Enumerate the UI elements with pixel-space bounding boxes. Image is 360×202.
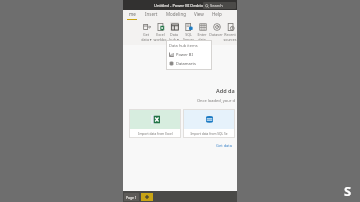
button[interactable]: Get bbox=[139, 21, 153, 45]
staticText: Import data from SQL Se bbox=[190, 132, 228, 136]
button[interactable]: Modeling bbox=[162, 10, 190, 21]
staticText: View bbox=[194, 11, 204, 17]
staticText: Data hub items bbox=[169, 43, 198, 48]
staticText: Data bbox=[170, 32, 178, 37]
staticText: Dataverse bbox=[209, 32, 223, 37]
staticText: me bbox=[129, 11, 136, 17]
staticText: Enter bbox=[197, 32, 207, 37]
staticText: Modeling bbox=[166, 11, 186, 17]
button[interactable]: me bbox=[123, 10, 141, 21]
staticText: hub ▾ bbox=[169, 37, 179, 42]
staticText: workbook bbox=[153, 37, 167, 42]
button[interactable]: Dataverse bbox=[209, 21, 223, 45]
staticText: Untitled - Power BI Desktop bbox=[154, 3, 206, 8]
staticText: Add da bbox=[216, 87, 235, 94]
staticText: sources ▾ bbox=[223, 37, 237, 42]
button[interactable]: Data bbox=[167, 21, 181, 45]
button[interactable]: SQL bbox=[181, 21, 195, 45]
button[interactable]: View bbox=[190, 10, 208, 21]
staticText: data ▾ bbox=[141, 37, 152, 42]
staticText: Help bbox=[212, 11, 222, 17]
button[interactable]: Get data bbox=[214, 141, 235, 150]
button[interactable]: Insert bbox=[141, 10, 162, 21]
staticText: Datamarts (Preview) bbox=[176, 61, 209, 66]
staticText: Import data from Excel bbox=[138, 132, 173, 136]
staticText: Server bbox=[183, 37, 194, 42]
button[interactable]: Excel bbox=[153, 21, 167, 45]
button[interactable]: Import data from Excel bbox=[129, 109, 181, 138]
staticText: Search bbox=[210, 3, 223, 8]
button[interactable]: Help bbox=[208, 10, 226, 21]
staticText: Power BI datasets bbox=[176, 52, 209, 57]
button[interactable]: Page 1 bbox=[124, 193, 139, 201]
staticText: data bbox=[198, 37, 206, 42]
staticText: Get data bbox=[216, 143, 233, 148]
button[interactable]: Datamarts (Preview) bbox=[166, 59, 212, 68]
staticText: Insert bbox=[145, 11, 158, 17]
staticText: S bbox=[344, 182, 352, 200]
button[interactable]: Enter bbox=[195, 21, 209, 45]
staticText: Excel bbox=[156, 32, 165, 37]
staticText: Recent bbox=[224, 32, 236, 37]
staticText: SQL bbox=[185, 32, 192, 37]
button[interactable]: Recent bbox=[223, 21, 237, 45]
button[interactable]: Import data from SQL Se bbox=[183, 109, 235, 138]
staticText: Page 1 bbox=[126, 195, 137, 200]
staticText: Get bbox=[143, 32, 149, 37]
button[interactable]: Add page bbox=[141, 193, 153, 201]
button[interactable]: Power BI datasets bbox=[166, 50, 212, 59]
button[interactable]: Search bbox=[203, 2, 236, 9]
staticText: Once loaded, your d bbox=[197, 98, 235, 103]
